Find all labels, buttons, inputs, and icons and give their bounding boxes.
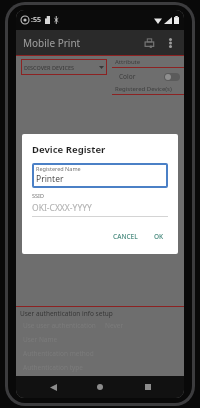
- staticText: SSID: [32, 192, 44, 199]
- staticText: Mobile Print: [23, 36, 81, 50]
- staticText: Authentication type: [23, 363, 83, 372]
- button[interactable]: Print: [140, 34, 158, 52]
- staticText: Registered Name: [36, 165, 81, 172]
- staticText: Authentication method: [23, 349, 94, 358]
- button[interactable]: CANCEL: [109, 230, 142, 243]
- button[interactable]: OK: [150, 230, 168, 243]
- button[interactable]: Home: [89, 376, 111, 398]
- staticText: OKI-CXXX-YYYY: [32, 202, 92, 214]
- button[interactable]: Back: [42, 376, 64, 398]
- button[interactable]: SSID: [32, 192, 168, 217]
- staticText: CANCEL: [113, 232, 138, 241]
- button[interactable]: Recent apps: [137, 376, 159, 398]
- staticText: Registered Device(s): [115, 85, 172, 93]
- staticText: OK: [154, 232, 164, 241]
- button[interactable]: Registered Name: [32, 163, 168, 188]
- button[interactable]: More options: [163, 36, 177, 50]
- staticText: DISCOVER DEVICES: [24, 64, 74, 71]
- button[interactable]: DISCOVER DEVICES: [21, 59, 107, 75]
- staticText: Attribute: [115, 58, 141, 66]
- staticText: Printer: [36, 173, 64, 185]
- staticText: Device Register: [32, 143, 106, 156]
- staticText: User authentication info setup: [20, 309, 113, 318]
- button[interactable]: Color toggle: [164, 73, 180, 81]
- staticText: Color: [119, 72, 136, 81]
- staticText: :55: [31, 15, 41, 25]
